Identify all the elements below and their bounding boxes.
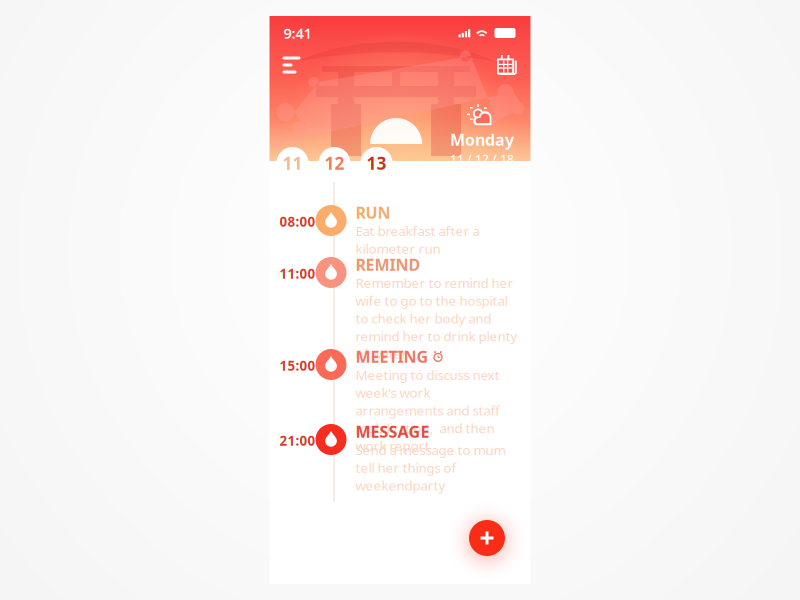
button[interactable]: Add event xyxy=(469,520,505,556)
staticText: Send a message to mum tell her things of… xyxy=(355,441,505,494)
button[interactable]: Calendar xyxy=(491,54,517,76)
staticText: 12 xyxy=(324,151,344,174)
staticText: 9:41 xyxy=(283,23,311,43)
button[interactable]: 13 xyxy=(360,147,392,179)
staticText: Meeting to discuss next week’s work arra… xyxy=(355,366,499,454)
staticText: 11:00 xyxy=(279,265,315,282)
staticText: MESSAGE xyxy=(355,421,429,442)
staticText: MEETING xyxy=(355,346,428,367)
staticText: Remember to remind her wife to go to the… xyxy=(355,274,517,362)
button[interactable]: 11 xyxy=(276,147,308,179)
staticText: 13 xyxy=(366,151,386,174)
button[interactable]: Menu xyxy=(282,54,308,76)
staticText: 11 xyxy=(282,151,302,174)
button[interactable]: 12 xyxy=(318,147,350,179)
staticText: 11 / 12 / 18 xyxy=(450,151,514,167)
staticText: RUN xyxy=(355,202,390,223)
staticText: 15:00 xyxy=(279,357,315,374)
button[interactable]: 08:00 xyxy=(269,205,530,257)
staticText: Eat breakfast after a kilometer run xyxy=(355,222,479,257)
button[interactable]: 15:00 xyxy=(269,349,530,454)
button[interactable]: 11:00 xyxy=(269,257,530,362)
button[interactable]: 21:00 xyxy=(269,424,530,494)
staticText: 21:00 xyxy=(279,432,315,449)
staticText: 08:00 xyxy=(279,213,315,230)
staticText: Monday xyxy=(450,129,514,150)
staticText: REMIND xyxy=(355,254,420,275)
